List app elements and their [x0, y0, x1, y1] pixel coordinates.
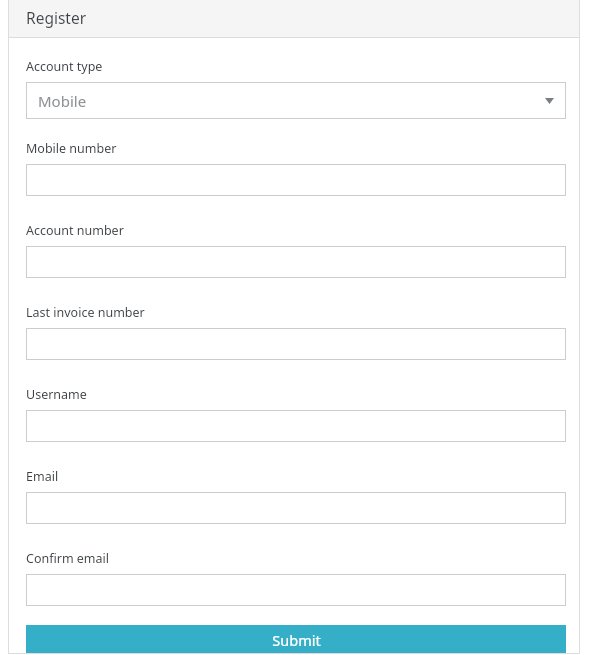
button[interactable]	[26, 164, 566, 196]
staticText: Mobile number	[26, 140, 117, 157]
staticText: Mobile	[38, 91, 545, 111]
button[interactable]	[26, 492, 566, 524]
button[interactable]	[26, 328, 566, 360]
staticText: Submit	[272, 630, 321, 650]
staticText: Account number	[26, 222, 124, 239]
staticText: Account type	[26, 58, 103, 75]
staticText: Username	[26, 386, 87, 403]
button[interactable]	[26, 246, 566, 278]
button[interactable]	[26, 410, 566, 442]
staticText: Last invoice number	[26, 304, 145, 321]
staticText: Register	[26, 7, 87, 28]
staticText: Email	[26, 468, 59, 485]
staticText: Confirm email	[26, 550, 110, 567]
button[interactable]: Submit	[26, 625, 566, 654]
button[interactable]: Account type selector	[26, 82, 566, 119]
button[interactable]	[26, 574, 566, 606]
